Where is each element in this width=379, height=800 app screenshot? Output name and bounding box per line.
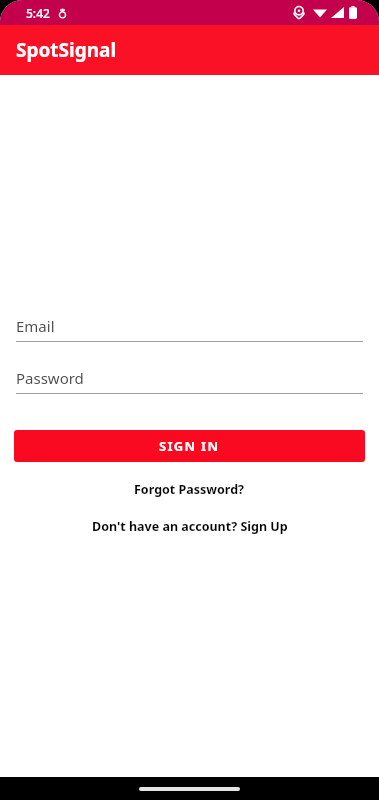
staticText: SpotSignal [16, 37, 117, 63]
other: Alarm [58, 8, 67, 19]
button[interactable]: Forgot Password? [0, 476, 379, 503]
other: Battery [349, 6, 357, 19]
staticText: Email [16, 316, 55, 336]
other: Mobile signal [331, 7, 344, 18]
staticText: Don't have an account? Sign Up [92, 518, 288, 535]
staticText: Forgot Password? [134, 481, 245, 498]
other: Wi-Fi [313, 7, 327, 18]
staticText: SIGN IN [159, 437, 220, 455]
staticText: 5:42 [26, 5, 50, 21]
button[interactable]: SIGN IN [14, 430, 365, 462]
button[interactable]: Email [16, 316, 363, 342]
button[interactable]: Don't have an account? Sign Up [0, 513, 379, 540]
button[interactable]: Password [16, 368, 363, 394]
staticText: Password [16, 368, 84, 388]
other: Location [294, 6, 304, 19]
